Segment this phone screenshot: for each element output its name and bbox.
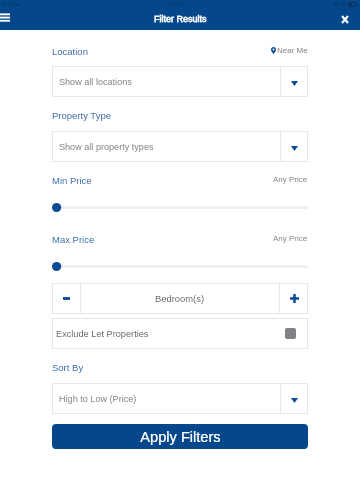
staticText: iPad (2, 1, 15, 8)
staticText: Min Price (52, 175, 92, 186)
staticText: Any Price (273, 175, 308, 184)
button[interactable]: Menu (0, 11, 18, 25)
staticText: 09:14 (168, 1, 184, 8)
button[interactable]: Decrease bedrooms (52, 283, 80, 314)
staticText: Apply Filters (140, 429, 221, 445)
staticText: 46 % (333, 1, 347, 8)
staticText: Show all property types (59, 142, 280, 152)
button[interactable]: High to Low (Price) (52, 383, 308, 414)
button[interactable]: Maximum price (52, 261, 308, 272)
staticText: Any Price (273, 234, 308, 243)
staticText: Sort By (52, 362, 84, 373)
button[interactable]: Close (337, 11, 353, 27)
button[interactable]: Minimum price (52, 202, 308, 213)
staticText: Location (52, 46, 88, 57)
button[interactable]: Apply Filters (52, 424, 308, 449)
staticText: Near Me (277, 46, 308, 55)
staticText: Bedroom(s) (155, 293, 205, 304)
button[interactable]: Show all property types (52, 131, 308, 162)
staticText: Max Price (52, 234, 95, 245)
staticText: High to Low (Price) (59, 394, 280, 404)
button[interactable]: Show all locations (52, 66, 308, 97)
button[interactable]: Near Me (271, 45, 308, 56)
staticText: Property Type (52, 110, 111, 121)
button[interactable]: Increase bedrooms (280, 283, 308, 314)
staticText: Exclude Let Properties (56, 329, 285, 339)
button[interactable]: Exclude Let Properties (52, 318, 308, 349)
staticText: Filter Results (154, 14, 207, 24)
staticText: Show all locations (59, 77, 280, 87)
